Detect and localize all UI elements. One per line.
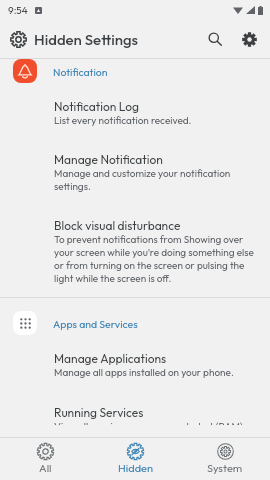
button[interactable]: Manage Notification [0,139,270,205]
staticText: Apps and Services [53,317,138,330]
staticText: Manage Notification [54,152,163,167]
staticText: Hidden [118,461,153,475]
staticText: System [207,461,243,475]
staticText: All [39,461,52,475]
staticText: 9:54 [8,4,28,17]
button[interactable]: Running Services [0,391,270,437]
staticText: Manage and customize your notification s… [54,167,258,193]
staticText: Manage Applications [54,351,167,366]
staticText: Notification Log [54,99,139,114]
button[interactable]: Search [202,26,228,52]
staticText: View all running processes and what (RAM… [54,420,258,425]
button[interactable]: Block visual disturbance [0,205,270,297]
staticText: Block visual disturbance [54,218,181,233]
staticText: List every notification received. [54,114,192,127]
button[interactable]: All [0,438,90,480]
staticText: Manage all apps installed on your phone. [54,366,234,379]
button[interactable]: Hidden [90,438,180,480]
staticText: To prevent notifications from Showing ov… [54,233,258,285]
staticText: Notification [53,65,108,78]
staticText: Hidden Settings [34,30,138,49]
button[interactable]: System [180,438,270,480]
staticText: Running Services [54,405,144,420]
button[interactable]: Manage Applications [0,335,270,391]
button[interactable]: Settings [236,26,262,52]
button[interactable]: Notification Log [0,83,270,139]
